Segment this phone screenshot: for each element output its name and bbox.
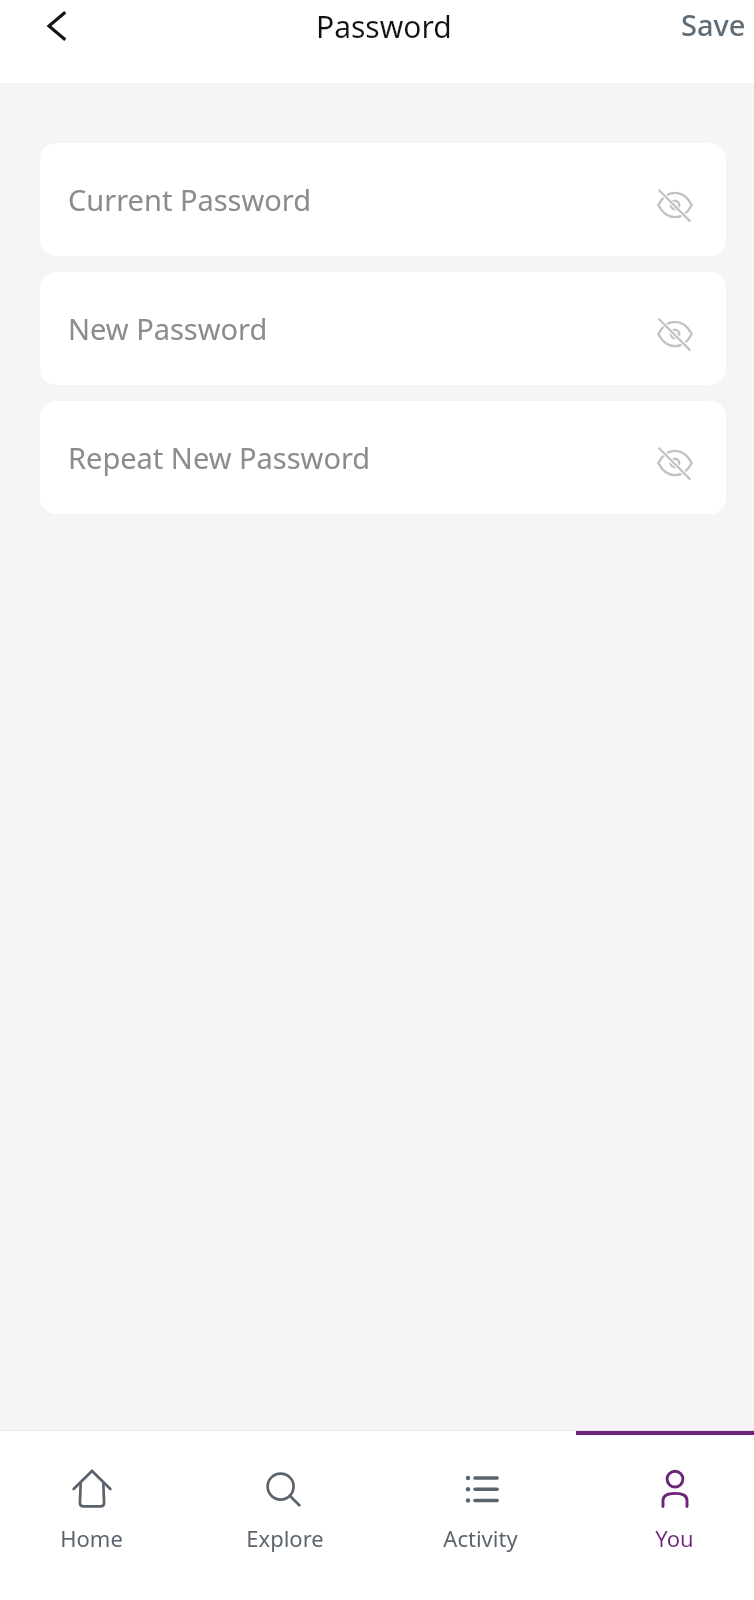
staticText: Password xyxy=(316,6,452,47)
button[interactable]: Show password xyxy=(649,308,701,360)
button[interactable]: New Password xyxy=(40,272,726,385)
button[interactable]: Save xyxy=(663,0,754,52)
button[interactable]: Repeat New Password xyxy=(40,401,726,514)
staticText: You xyxy=(655,1523,694,1553)
button[interactable]: Back xyxy=(28,0,84,52)
button[interactable]: Show password xyxy=(649,437,701,489)
staticText: Repeat New Password xyxy=(68,438,371,477)
button[interactable]: Home xyxy=(0,1431,188,1553)
staticText: New Password xyxy=(68,309,268,348)
button[interactable]: Current Password xyxy=(40,143,726,256)
staticText: Save xyxy=(681,5,746,41)
button[interactable]: Explore xyxy=(188,1431,376,1553)
staticText: Current Password xyxy=(68,180,312,219)
staticText: Explore xyxy=(246,1523,324,1553)
button[interactable]: Activity xyxy=(376,1431,565,1553)
button[interactable]: Show password xyxy=(649,179,701,231)
staticText: Activity xyxy=(443,1523,518,1553)
staticText: Home xyxy=(60,1523,123,1553)
button[interactable]: You xyxy=(565,1431,754,1553)
